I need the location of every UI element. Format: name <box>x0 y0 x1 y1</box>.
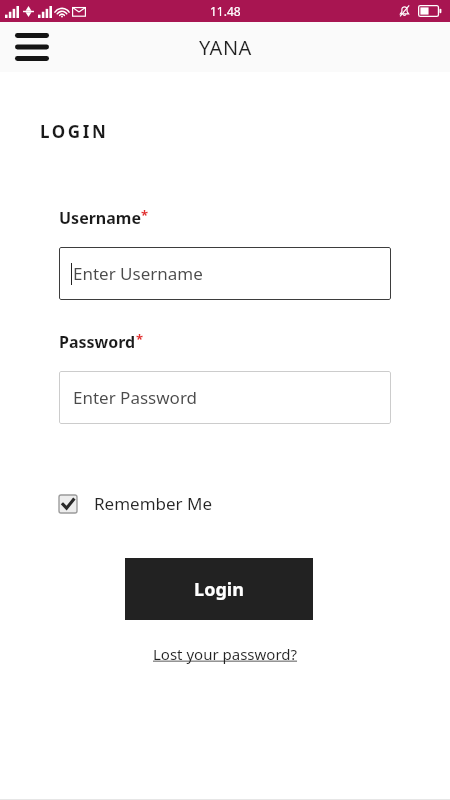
button[interactable]: Lost your password? <box>147 640 304 668</box>
staticText: Remember Me <box>94 492 213 515</box>
staticText: Login <box>194 577 244 602</box>
button[interactable]: Open navigation menu <box>8 23 56 71</box>
staticText: Enter Password <box>73 386 198 409</box>
button[interactable]: Enter Password <box>59 371 391 424</box>
staticText: 11.48 <box>210 3 241 19</box>
staticText: LOGIN <box>40 120 109 143</box>
staticText: * <box>141 206 149 224</box>
staticText: Enter Username <box>73 262 203 285</box>
staticText: * <box>136 330 144 348</box>
button[interactable]: Login <box>125 558 313 620</box>
staticText: Password <box>59 331 136 353</box>
staticText: YANA <box>199 34 252 61</box>
button[interactable]: Remember Me <box>52 488 225 519</box>
staticText: Username <box>59 207 141 229</box>
button[interactable]: Enter Username <box>59 247 391 300</box>
